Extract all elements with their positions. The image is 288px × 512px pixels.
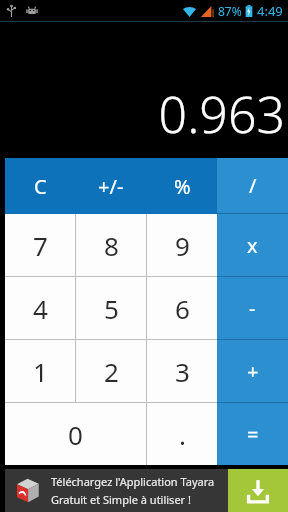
staticText: 7: [33, 228, 48, 263]
button[interactable]: 3: [147, 340, 217, 402]
button[interactable]: 4: [5, 277, 75, 339]
button[interactable]: 1: [5, 340, 75, 402]
staticText: /: [249, 172, 257, 199]
staticText: Gratuit et Simple à utiliser !: [51, 492, 191, 507]
staticText: 1: [33, 354, 48, 389]
button[interactable]: 8: [76, 214, 146, 276]
button[interactable]: +: [217, 340, 288, 402]
staticText: x: [247, 232, 258, 259]
button[interactable]: 7: [5, 214, 75, 276]
button[interactable]: 2: [76, 340, 146, 402]
staticText: 5: [104, 291, 119, 326]
button[interactable]: Téléchargez l'Application Tayara: [5, 469, 288, 512]
button[interactable]: C: [5, 158, 75, 214]
staticText: =: [247, 421, 259, 448]
button[interactable]: 9: [147, 214, 217, 276]
staticText: Téléchargez l'Application Tayara: [51, 474, 215, 489]
staticText: 3: [175, 354, 190, 389]
staticText: 8: [104, 228, 119, 263]
button[interactable]: Download: [228, 469, 288, 512]
staticText: C: [34, 173, 47, 200]
button[interactable]: -: [217, 277, 288, 339]
staticText: 2: [104, 354, 119, 389]
staticText: +: [247, 358, 259, 385]
button[interactable]: %: [147, 158, 217, 214]
staticText: 6: [175, 291, 190, 326]
staticText: +/-: [98, 173, 124, 200]
staticText: .: [179, 417, 186, 452]
button[interactable]: /: [217, 158, 288, 213]
button[interactable]: .: [147, 403, 217, 465]
button[interactable]: +/-: [76, 158, 146, 214]
staticText: 0.963: [158, 80, 285, 148]
button[interactable]: x: [217, 214, 288, 276]
button[interactable]: 5: [76, 277, 146, 339]
button[interactable]: =: [217, 403, 288, 465]
button[interactable]: 6: [147, 277, 217, 339]
staticText: 4: [33, 291, 48, 326]
staticText: 4:49: [257, 2, 283, 20]
staticText: 9: [175, 228, 190, 263]
staticText: %: [174, 173, 191, 200]
staticText: 87%: [218, 3, 242, 19]
staticText: -: [249, 295, 256, 322]
button[interactable]: 0: [5, 403, 146, 465]
staticText: 0: [68, 417, 83, 452]
